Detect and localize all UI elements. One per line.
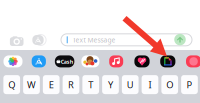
staticText: P [186,78,192,91]
button[interactable]: Digital Touch [134,55,150,67]
button[interactable]: P [181,75,198,94]
staticText: Cash [61,58,73,65]
staticText: U [127,78,134,91]
staticText: I [148,78,151,91]
button[interactable]: O [161,75,178,94]
button[interactable]: W [23,75,40,94]
button[interactable]: E [43,75,60,94]
staticText: T [88,78,93,91]
button[interactable]: Apple Cash [55,55,74,67]
button[interactable]: More apps [186,55,200,67]
button[interactable]: I [142,75,158,94]
button[interactable]: Photos [3,55,22,67]
staticText: Q [8,78,15,91]
staticText: E [49,78,54,91]
button[interactable]: Images [160,55,175,67]
button[interactable]: Apps [29,33,46,47]
button[interactable]: Photo [81,55,99,67]
staticText: Text Message [72,36,115,44]
button[interactable]: Y [102,75,119,94]
button[interactable]: Music [109,55,123,67]
button[interactable]: App Store [32,55,46,67]
button[interactable]: R [63,75,79,94]
button[interactable]: U [122,75,139,94]
button[interactable]: Q [3,75,20,94]
staticText: Y [108,78,113,91]
button[interactable]: Send [173,33,186,46]
button[interactable]: T [82,75,99,94]
button[interactable]: Take photo [8,33,25,47]
staticText: R [68,78,74,91]
staticText: W [27,78,36,91]
staticText: O [166,78,173,91]
